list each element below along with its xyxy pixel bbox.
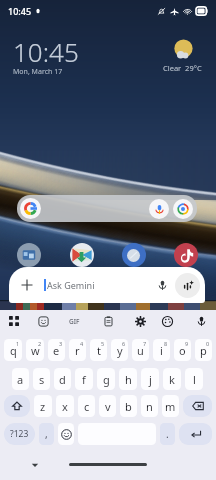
staticText: l: [193, 372, 196, 387]
button[interactable]: Settings: [131, 312, 149, 330]
button[interactable]: ,: [39, 423, 54, 445]
staticText: ?123: [10, 428, 29, 440]
staticText: 10:45: [8, 5, 32, 17]
staticText: 0: [206, 340, 210, 347]
button[interactable]: App: [70, 243, 94, 267]
button[interactable]: e: [48, 339, 65, 361]
button[interactable]: [17, 195, 197, 222]
button[interactable]: .: [160, 423, 175, 445]
staticText: z: [40, 399, 46, 414]
staticText: 3: [59, 340, 63, 347]
button[interactable]: Gemini Live: [175, 273, 200, 298]
button[interactable]: Theme: [158, 312, 176, 330]
button[interactable]: App: [122, 243, 146, 267]
button[interactable]: Hide keyboard: [28, 458, 42, 472]
staticText: o: [179, 343, 186, 358]
button[interactable]: c: [78, 395, 95, 417]
staticText: 8: [164, 340, 168, 347]
button[interactable]: h: [119, 368, 137, 390]
staticText: 5: [101, 340, 105, 347]
button[interactable]: p: [195, 339, 212, 361]
staticText: t: [97, 343, 101, 358]
staticText: 9: [185, 340, 189, 347]
button[interactable]: Backspace: [183, 395, 212, 417]
staticText: k: [169, 372, 175, 387]
staticText: d: [59, 372, 66, 387]
button[interactable]: v: [99, 395, 116, 417]
button[interactable]: x: [56, 395, 74, 417]
staticText: g: [103, 372, 110, 387]
staticText: 7: [143, 340, 147, 347]
button[interactable]: q: [4, 339, 22, 361]
button[interactable]: App: [174, 243, 198, 267]
staticText: 1: [16, 340, 20, 347]
button[interactable]: t: [90, 339, 107, 361]
button[interactable]: z: [34, 395, 52, 417]
staticText: r: [75, 343, 80, 358]
staticText: Ask Gemini: [47, 279, 95, 291]
staticText: x: [62, 399, 68, 414]
button[interactable]: o: [174, 339, 191, 361]
staticText: b: [125, 399, 132, 414]
staticText: s: [39, 372, 45, 387]
button[interactable]: Voice: [192, 312, 210, 330]
button[interactable]: Emoji: [58, 423, 74, 445]
button[interactable]: Add: [18, 276, 36, 294]
button[interactable]: y: [111, 339, 128, 361]
button[interactable]: GIF: [65, 312, 83, 330]
staticText: c: [84, 399, 90, 414]
staticText: 10:45: [13, 34, 79, 69]
button[interactable]: j: [141, 368, 159, 390]
staticText: w: [31, 343, 40, 358]
staticText: 4: [80, 340, 84, 347]
button[interactable]: Enter: [179, 423, 212, 445]
staticText: h: [125, 372, 132, 387]
staticText: a: [17, 372, 24, 387]
button[interactable]: b: [120, 395, 137, 417]
staticText: 6: [122, 340, 126, 347]
button[interactable]: w: [26, 339, 44, 361]
button[interactable]: r: [69, 339, 86, 361]
staticText: e: [53, 343, 60, 358]
button[interactable]: Stickers: [34, 312, 52, 330]
staticText: Mon, March 17: [13, 67, 63, 77]
button[interactable]: ?123: [4, 423, 35, 445]
button[interactable]: g: [97, 368, 115, 390]
button[interactable]: App: [17, 243, 41, 267]
staticText: q: [10, 343, 17, 358]
button[interactable]: s: [33, 368, 50, 390]
button[interactable]: d: [54, 368, 71, 390]
button[interactable]: Voice input: [152, 275, 172, 295]
staticText: v: [105, 399, 111, 414]
staticText: ,: [45, 427, 48, 441]
staticText: .: [166, 427, 169, 441]
staticText: u: [137, 343, 144, 358]
button[interactable]: f: [75, 368, 93, 390]
staticText: 2: [38, 340, 42, 347]
button[interactable]: a: [12, 368, 29, 390]
staticText: GIF: [69, 317, 80, 326]
button[interactable]: Shift: [4, 395, 30, 417]
button[interactable]: m: [162, 395, 179, 417]
button[interactable]: n: [141, 395, 158, 417]
button[interactable]: u: [132, 339, 149, 361]
staticText: j: [149, 372, 152, 387]
staticText: n: [146, 399, 153, 414]
staticText: Clear 29°C: [163, 63, 202, 73]
staticText: y: [117, 343, 123, 358]
button[interactable]: l: [185, 368, 203, 390]
staticText: f: [82, 372, 86, 387]
button[interactable]: k: [163, 368, 181, 390]
button[interactable]: Clipboard: [99, 312, 117, 330]
staticText: p: [200, 343, 207, 358]
staticText: i: [160, 343, 163, 358]
button[interactable]: i: [153, 339, 170, 361]
staticText: m: [165, 399, 176, 414]
button[interactable]: Apps: [5, 312, 23, 330]
